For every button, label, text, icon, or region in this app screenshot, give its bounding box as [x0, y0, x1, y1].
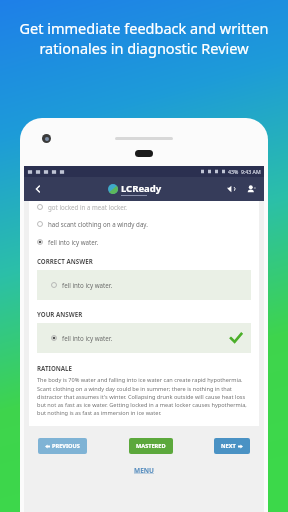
staticText: 43% 9:43 AM: [228, 168, 261, 175]
button[interactable]: MENU: [132, 464, 156, 477]
button[interactable]: fell into icy water.: [51, 281, 113, 289]
staticText: Get immediate feedback and written ratio…: [10, 18, 278, 58]
button[interactable]: got locked in a meat locker.: [37, 203, 127, 211]
staticText: The body is 70% water and falling into i…: [37, 376, 251, 416]
button[interactable]: fell into icy water.: [51, 334, 113, 342]
staticText: fell into icy water.: [62, 334, 113, 342]
staticText: got locked in a meat locker.: [48, 203, 127, 211]
staticText: MENU: [134, 466, 154, 475]
staticText: fell into icy water.: [62, 281, 113, 289]
staticText: MASTERED: [136, 442, 166, 450]
button[interactable]: had scant clothing on a windy day.: [37, 220, 148, 228]
staticText: fell into icy water.: [48, 238, 99, 246]
staticText: LCReady: [121, 182, 162, 195]
staticText: YOUR ANSWER: [37, 310, 83, 318]
staticText: had scant clothing on a windy day.: [48, 220, 148, 228]
button[interactable]: Sound: [224, 182, 238, 196]
staticText: NEXT: [221, 442, 236, 450]
staticText: PREVIOUS: [52, 442, 80, 450]
button[interactable]: PREVIOUS: [38, 438, 87, 454]
button[interactable]: MASTERED: [129, 438, 173, 454]
staticText: RATIONALE: [37, 364, 73, 372]
button[interactable]: fell into icy water.: [37, 238, 99, 246]
staticText: CORRECT ANSWER: [37, 257, 93, 265]
button[interactable]: Profile: [244, 182, 258, 196]
button[interactable]: Back: [30, 181, 46, 197]
button[interactable]: NEXT: [214, 438, 250, 454]
